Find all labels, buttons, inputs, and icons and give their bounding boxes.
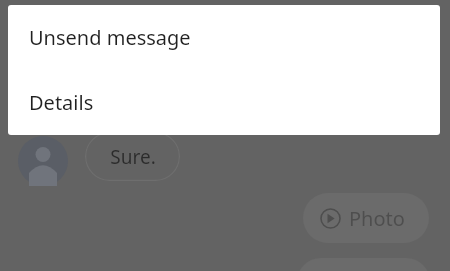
button[interactable]: Unsend message: [8, 5, 440, 70]
button[interactable]: Photo: [303, 193, 429, 243]
button[interactable]: Sure.: [85, 132, 180, 181]
staticText: Details: [29, 89, 94, 116]
button[interactable]: Details: [8, 70, 440, 135]
staticText: Sure.: [110, 144, 156, 170]
staticText: Photo: [349, 205, 405, 232]
staticText: Unsend message: [29, 24, 191, 51]
